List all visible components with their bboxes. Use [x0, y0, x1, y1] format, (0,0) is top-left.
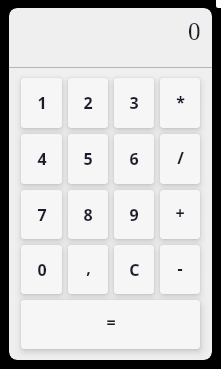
staticText: 8 — [83, 204, 93, 226]
staticText: , — [86, 257, 91, 279]
button[interactable]: 5 — [68, 134, 108, 184]
staticText: 0 — [37, 259, 47, 281]
staticText: 3 — [129, 92, 139, 114]
button[interactable]: + — [160, 190, 200, 239]
button[interactable]: / — [160, 134, 200, 184]
button[interactable]: 7 — [21, 190, 62, 239]
button[interactable]: 4 — [21, 134, 62, 184]
button[interactable]: 6 — [114, 134, 154, 184]
staticText: 0 — [188, 18, 201, 46]
staticText: / — [177, 147, 184, 169]
button[interactable]: * — [160, 78, 200, 128]
staticText: 7 — [37, 204, 47, 226]
staticText: 2 — [83, 92, 93, 114]
button[interactable]: = — [21, 300, 200, 349]
staticText: C — [129, 259, 140, 281]
staticText: + — [175, 202, 185, 224]
staticText: 9 — [129, 204, 139, 226]
button[interactable]: 8 — [68, 190, 108, 239]
staticText: - — [177, 257, 183, 279]
button[interactable]: , — [68, 245, 108, 294]
staticText: = — [106, 311, 116, 333]
button[interactable]: 0 — [21, 245, 62, 294]
button[interactable]: 1 — [21, 78, 62, 128]
button[interactable]: C — [114, 245, 154, 294]
button[interactable]: 3 — [114, 78, 154, 128]
button[interactable]: 2 — [68, 78, 108, 128]
button[interactable]: - — [160, 245, 200, 294]
button[interactable]: 9 — [114, 190, 154, 239]
staticText: 4 — [37, 148, 47, 170]
staticText: * — [176, 91, 185, 113]
staticText: 1 — [37, 92, 47, 114]
staticText: 6 — [129, 148, 139, 170]
staticText: 5 — [83, 148, 93, 170]
